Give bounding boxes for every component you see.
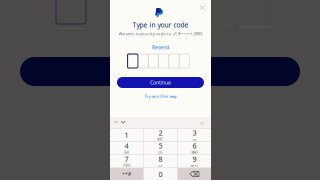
button[interactable]: 0 <box>144 168 177 180</box>
button[interactable]: 1 <box>110 129 143 141</box>
staticText: MNO <box>191 151 197 154</box>
button[interactable]: Close <box>197 2 208 13</box>
button[interactable]: +*# <box>110 168 143 180</box>
staticText: 6 <box>192 141 196 151</box>
button[interactable]: 2 <box>144 129 177 141</box>
staticText: ▭ <box>200 120 204 126</box>
staticText: 8 <box>158 154 162 164</box>
button[interactable]: Try another way <box>110 93 211 99</box>
staticText: We sent a security code to +1 9•••-•••-2… <box>118 31 202 36</box>
button[interactable]: 4 <box>110 142 143 154</box>
staticText: Resend <box>152 44 169 51</box>
button[interactable]: 8 <box>144 155 177 167</box>
staticText: 0 <box>158 169 162 179</box>
staticText: Type in your code <box>132 20 188 30</box>
staticText: GHI <box>124 151 129 154</box>
button[interactable]: 3 <box>178 129 211 141</box>
staticText: 9 <box>192 154 196 164</box>
button[interactable]: 7 <box>110 155 143 167</box>
button[interactable]: 6 <box>178 142 211 154</box>
staticText: Try another way <box>144 93 176 99</box>
button[interactable]: Resend <box>110 45 211 50</box>
staticText: PQRS <box>123 164 130 167</box>
staticText: 2 <box>158 128 162 137</box>
button[interactable]: Continue <box>117 77 204 88</box>
button[interactable]: 9 <box>178 155 211 167</box>
staticText: TUV <box>158 164 163 167</box>
staticText: 1 <box>125 130 129 140</box>
staticText: ⌫ <box>189 170 199 178</box>
staticText: +*# <box>122 171 131 177</box>
staticText: 3 <box>192 128 196 137</box>
button[interactable]: 5 <box>144 142 177 154</box>
staticText: JKL <box>158 151 162 154</box>
staticText: DEF <box>192 138 196 141</box>
staticText: Continue <box>150 79 171 86</box>
staticText: WXYZ <box>190 164 198 167</box>
button[interactable]: ⌫ <box>178 168 211 180</box>
staticText: 7 <box>125 154 129 164</box>
staticText: 5 <box>158 141 162 151</box>
staticText: ABC <box>157 138 163 141</box>
staticText: 4 <box>125 141 129 151</box>
